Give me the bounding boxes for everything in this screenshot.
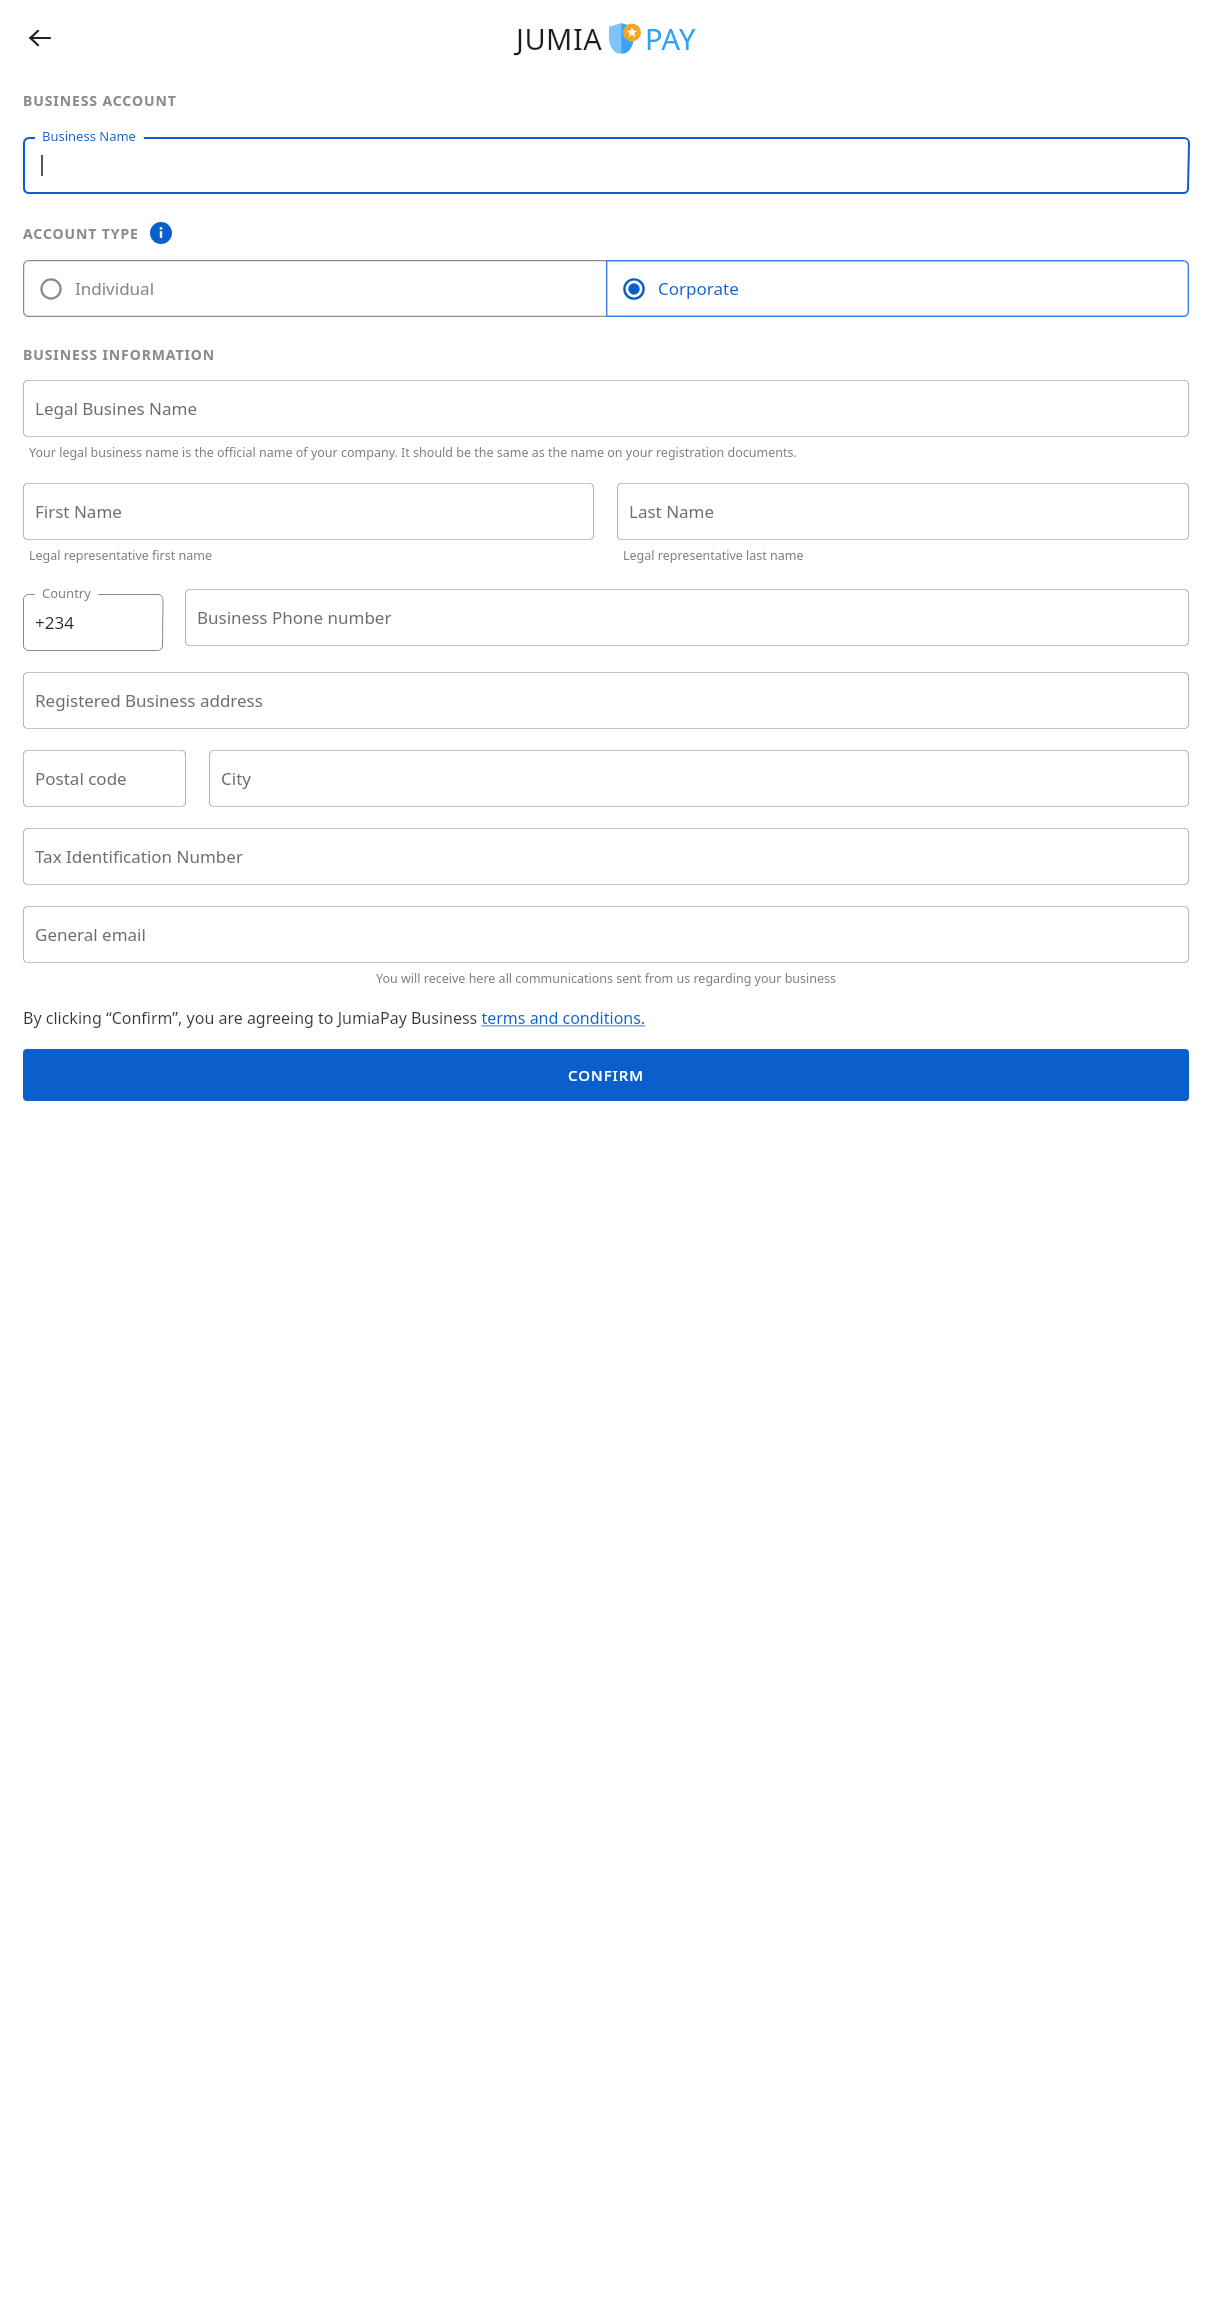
staticText: PAY xyxy=(645,19,696,58)
staticText: General email xyxy=(35,923,146,946)
staticText: You will receive here all communications… xyxy=(376,970,837,987)
button[interactable]: Registered Business address xyxy=(23,672,1189,729)
button[interactable]: Last Name xyxy=(617,483,1189,540)
staticText: Legal Busines Name xyxy=(35,397,197,420)
staticText: +234 xyxy=(35,611,74,634)
staticText: By clicking “Confirm”, you are agreeing … xyxy=(23,1007,646,1029)
button[interactable]: Tax Identification Number xyxy=(23,828,1189,885)
staticText: First Name xyxy=(35,500,122,523)
button[interactable]: CONFIRM xyxy=(23,1049,1189,1101)
staticText: Business Phone number xyxy=(197,606,392,629)
button[interactable]: First Name xyxy=(23,483,594,540)
staticText: Legal representative first name xyxy=(29,547,212,564)
staticText: Corporate xyxy=(658,277,739,300)
button[interactable]: Individual xyxy=(23,260,606,317)
staticText: ACCOUNT TYPE xyxy=(23,224,139,243)
button[interactable]: Account type info xyxy=(150,222,172,244)
staticText: Your legal business name is the official… xyxy=(29,444,1189,461)
staticText: Legal representative last name xyxy=(623,547,804,564)
staticText: Tax Identification Number xyxy=(35,845,243,868)
staticText: Postal code xyxy=(35,767,127,790)
staticText: Individual xyxy=(75,277,155,300)
button[interactable]: Corporate xyxy=(606,260,1189,317)
button[interactable]: Postal code xyxy=(23,750,186,807)
staticText: Last Name xyxy=(629,500,715,523)
staticText: BUSINESS INFORMATION xyxy=(23,345,216,364)
staticText: Registered Business address xyxy=(35,689,263,712)
staticText: Country xyxy=(42,584,91,602)
staticText: Business Name xyxy=(42,127,136,145)
staticText: CONFIRM xyxy=(568,1065,645,1085)
staticText: JUMIA xyxy=(516,19,603,58)
button[interactable]: General email xyxy=(23,906,1189,963)
staticText: City xyxy=(221,767,251,790)
button[interactable]: City xyxy=(209,750,1189,807)
button[interactable] xyxy=(23,137,1189,194)
button[interactable]: Back xyxy=(18,16,62,60)
button[interactable]: Legal Busines Name xyxy=(23,380,1189,437)
button[interactable]: By clicking “Confirm”, you are agreeing … xyxy=(23,1007,1189,1029)
button[interactable]: +234 xyxy=(23,594,163,651)
button[interactable]: Business Phone number xyxy=(185,589,1189,646)
staticText: BUSINESS ACCOUNT xyxy=(23,91,177,110)
